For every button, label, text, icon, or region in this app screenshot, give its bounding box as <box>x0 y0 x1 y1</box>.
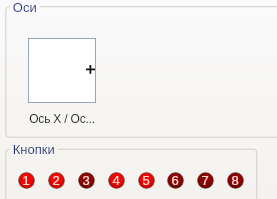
button[interactable]: Кнопка 6 <box>167 172 184 189</box>
button[interactable]: Ось X / Ось Y график <box>28 38 96 103</box>
button[interactable]: Кнопка 5 <box>138 172 155 189</box>
button[interactable]: Кнопка 7 <box>197 172 214 189</box>
button[interactable]: Кнопка 4 <box>108 172 125 189</box>
button[interactable]: Кнопка 1 <box>18 172 35 189</box>
button[interactable]: Кнопка 2 <box>48 172 65 189</box>
button[interactable]: Кнопка 8 <box>227 172 244 189</box>
button[interactable]: Кнопка 3 <box>78 172 95 189</box>
